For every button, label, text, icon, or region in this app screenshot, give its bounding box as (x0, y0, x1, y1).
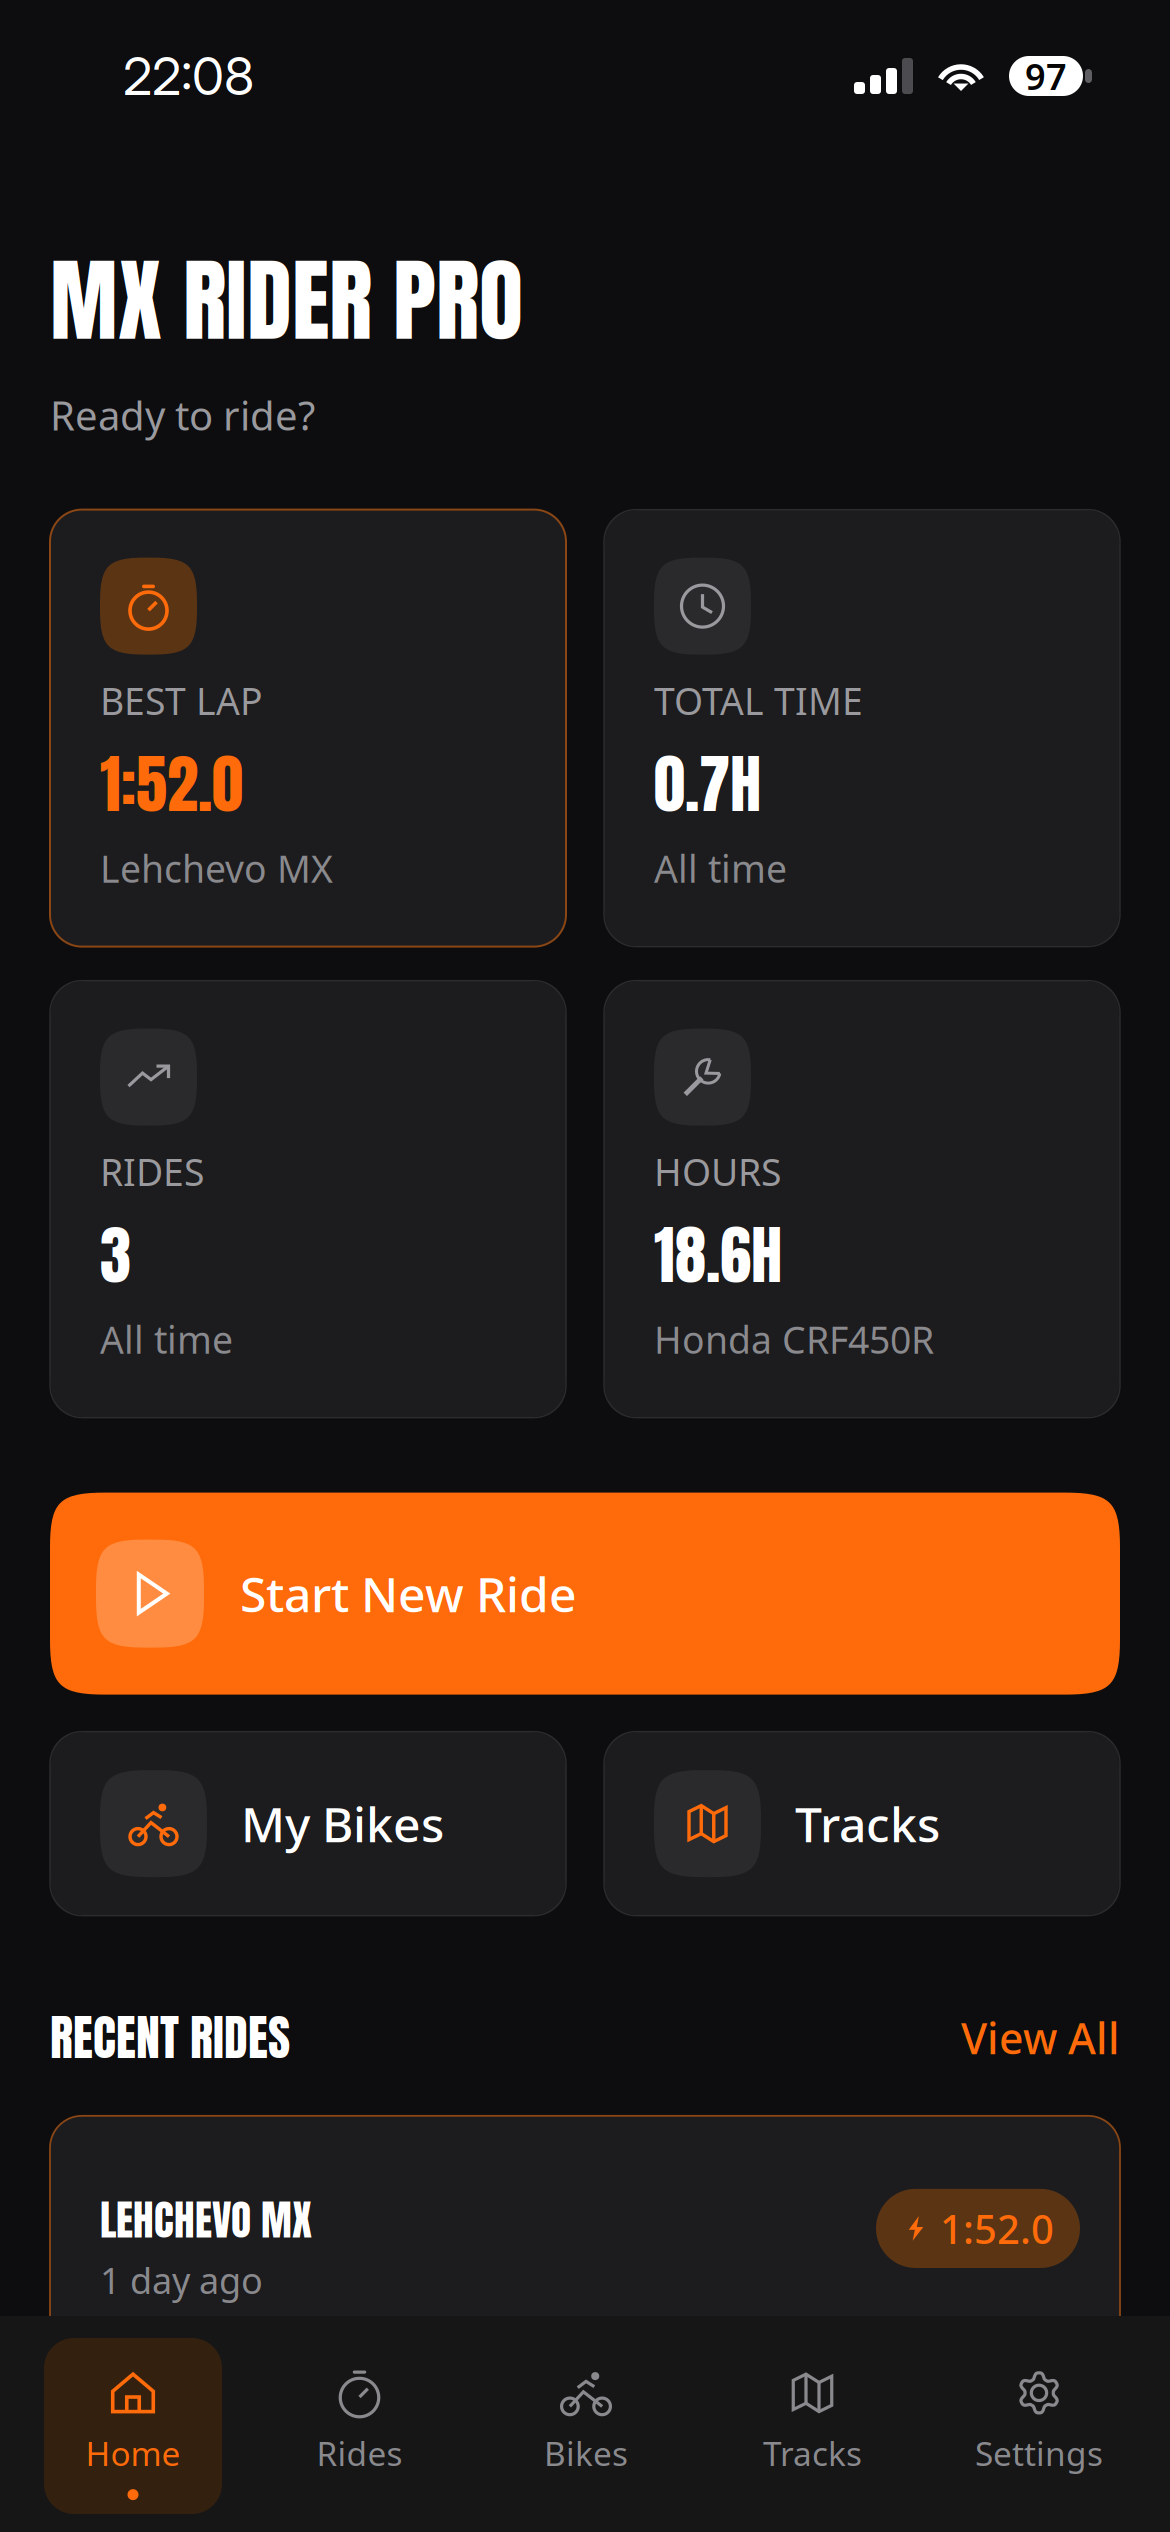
staticText: BEST LAP (100, 676, 263, 725)
button[interactable]: LEHCHEVO MX (50, 2116, 1120, 2456)
button[interactable]: My Bikes (50, 1732, 566, 1916)
staticText: Tracks (795, 1792, 940, 1855)
button[interactable]: Tracks (604, 1732, 1120, 1916)
button[interactable]: Start New Ride (50, 1493, 1120, 1695)
staticText: Rides (316, 2431, 402, 2475)
staticText: 0.7H (654, 737, 761, 831)
staticText: Ready to ride? (50, 388, 315, 442)
staticText: View All (961, 2009, 1120, 2066)
staticText: Bikes (544, 2431, 628, 2475)
staticText: 97 (1025, 52, 1067, 100)
staticText: TOTAL TIME (654, 676, 863, 725)
staticText: 38 min (509, 2341, 611, 2383)
staticText: Settings (975, 2431, 1103, 2475)
staticText: 3 (100, 1208, 131, 1302)
staticText: RIDES (100, 1147, 204, 1196)
staticText: RECENT RIDES (50, 2002, 290, 2074)
button[interactable]: Bikes (497, 2338, 675, 2514)
button[interactable]: Settings (950, 2338, 1128, 2514)
staticText: All time (100, 1314, 233, 1364)
staticText: Home (85, 2431, 180, 2475)
staticText: 12.4 km (311, 2341, 429, 2383)
button[interactable]: Rides (270, 2338, 448, 2514)
button[interactable]: Tracks (723, 2338, 901, 2514)
staticText: 1:52.0 (940, 2202, 1054, 2255)
staticText: My Bikes (241, 1792, 444, 1855)
staticText: Start New Ride (240, 1562, 577, 1625)
staticText: LEHCHEVO MX (100, 2189, 312, 2251)
staticText: Honda CRF450R (654, 1314, 934, 1364)
button[interactable]: Home (44, 2338, 222, 2514)
staticText: MX RIDER PRO (50, 232, 523, 368)
staticText: HOURS (654, 1147, 781, 1196)
staticText: 1:52.0 (100, 737, 243, 831)
button[interactable]: View All (961, 2009, 1120, 2066)
staticText: Tracks (763, 2431, 862, 2475)
staticText: 22:08 (123, 44, 254, 107)
staticText: Lehchevo MX (100, 843, 333, 893)
staticText: 1 day ago (100, 2256, 263, 2304)
staticText: 18.6H (654, 1208, 782, 1302)
staticText: 4 laps (137, 2341, 224, 2383)
staticText: All time (654, 843, 787, 893)
